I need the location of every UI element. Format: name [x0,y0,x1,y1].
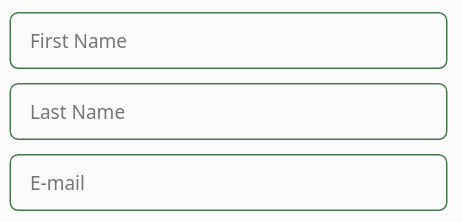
button[interactable]: E-mail [9,154,448,211]
staticText: Last Name [30,99,126,125]
staticText: E-mail [30,170,85,196]
button[interactable]: First Name [9,12,448,69]
staticText: First Name [30,28,128,54]
button[interactable]: Last Name [9,83,448,140]
